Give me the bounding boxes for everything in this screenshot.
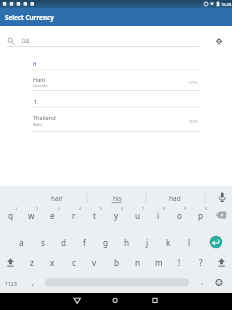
staticText: T: [34, 99, 37, 105]
staticText: i: [157, 210, 160, 221]
button[interactable]: z: [21, 251, 42, 273]
button[interactable]: !: [169, 251, 190, 273]
staticText: Select Currency: [5, 13, 54, 22]
button[interactable]: y: [106, 204, 127, 226]
staticText: n: [135, 257, 141, 268]
staticText: ?123: [5, 280, 17, 287]
staticText: Haiti: [33, 76, 46, 84]
staticText: Thailand: [33, 114, 56, 122]
button[interactable]: v: [84, 251, 105, 273]
button[interactable]: ?123: [1, 272, 21, 294]
button[interactable]: o: [169, 204, 190, 226]
staticText: k: [166, 237, 171, 248]
button[interactable]: [21, 70, 201, 90]
button[interactable]: w: [21, 204, 42, 226]
staticText: 1: [15, 206, 18, 211]
staticText: d: [61, 237, 67, 248]
staticText: w: [28, 210, 35, 221]
staticText: Baht: [33, 122, 43, 128]
button[interactable]: [212, 34, 226, 48]
button[interactable]: ?: [190, 251, 211, 273]
staticText: c: [72, 257, 76, 268]
button[interactable]: [101, 293, 129, 310]
button[interactable]: t: [84, 204, 105, 226]
staticText: a: [19, 237, 24, 248]
staticText: THB: [189, 119, 198, 125]
button[interactable]: [141, 293, 169, 310]
staticText: b: [114, 257, 120, 268]
button[interactable]: [212, 190, 232, 205]
staticText: hair: [51, 194, 64, 203]
button[interactable]: p: [190, 204, 211, 226]
button[interactable]: q: [0, 204, 21, 226]
staticText: 7: [142, 206, 145, 211]
button[interactable]: [211, 273, 232, 293]
button[interactable]: [0, 251, 21, 273]
button[interactable]: [211, 251, 232, 273]
button[interactable]: n: [127, 251, 148, 273]
staticText: y: [114, 210, 119, 221]
button[interactable]: k: [158, 231, 179, 253]
staticText: x: [50, 257, 55, 268]
button[interactable]: had: [155, 192, 195, 204]
button[interactable]: i: [148, 204, 169, 226]
staticText: l: [188, 237, 191, 248]
button[interactable]: [63, 293, 91, 310]
staticText: p: [198, 210, 204, 221]
button[interactable]: b: [106, 251, 127, 273]
button[interactable]: f: [74, 231, 95, 253]
staticText: q: [8, 210, 14, 221]
button[interactable]: [211, 204, 232, 226]
staticText: g: [103, 237, 109, 248]
staticText: j: [146, 237, 149, 248]
button[interactable]: u: [127, 204, 148, 226]
staticText: 0: [205, 206, 208, 211]
button[interactable]: h: [116, 231, 137, 253]
staticText: his: [113, 194, 122, 203]
button[interactable]: [45, 275, 189, 290]
button[interactable]: d: [53, 231, 74, 253]
button[interactable]: a: [11, 231, 32, 253]
staticText: .: [201, 276, 204, 287]
staticText: v: [92, 257, 97, 268]
staticText: had: [169, 194, 181, 203]
button[interactable]: r: [63, 204, 84, 226]
staticText: HTG: [189, 80, 198, 86]
staticText: 9: [184, 206, 187, 211]
staticText: 4: [79, 206, 82, 211]
button[interactable]: g: [95, 231, 116, 253]
staticText: 8: [163, 206, 166, 211]
staticText: z: [30, 257, 34, 268]
staticText: u: [135, 210, 141, 221]
staticText: o: [177, 210, 182, 221]
button[interactable]: [7, 33, 199, 47]
button[interactable]: ,: [25, 270, 41, 292]
staticText: h: [124, 237, 130, 248]
staticText: ,: [32, 276, 35, 287]
button[interactable]: s: [32, 231, 53, 253]
staticText: 16:28: [221, 2, 232, 7]
button[interactable]: l: [179, 231, 200, 253]
button[interactable]: [21, 107, 201, 131]
button[interactable]: j: [137, 231, 158, 253]
button[interactable]: hair: [37, 192, 77, 204]
staticText: r: [72, 210, 76, 221]
button[interactable]: e: [42, 204, 63, 226]
staticText: ?: [199, 257, 203, 268]
button[interactable]: x: [42, 251, 63, 273]
staticText: 6: [121, 206, 124, 211]
button[interactable]: c: [63, 251, 84, 273]
button[interactable]: his: [97, 192, 137, 204]
staticText: H: [33, 61, 37, 67]
button[interactable]: m: [148, 251, 169, 273]
staticText: m: [155, 257, 163, 268]
staticText: Gourde: [33, 83, 48, 89]
staticText: 3: [58, 206, 61, 211]
staticText: e: [50, 210, 55, 221]
button[interactable]: .: [194, 270, 210, 292]
button[interactable]: [205, 231, 227, 253]
staticText: 5: [100, 206, 103, 211]
staticText: 2: [36, 206, 39, 211]
staticText: !: [178, 257, 181, 268]
staticText: f: [83, 237, 86, 248]
